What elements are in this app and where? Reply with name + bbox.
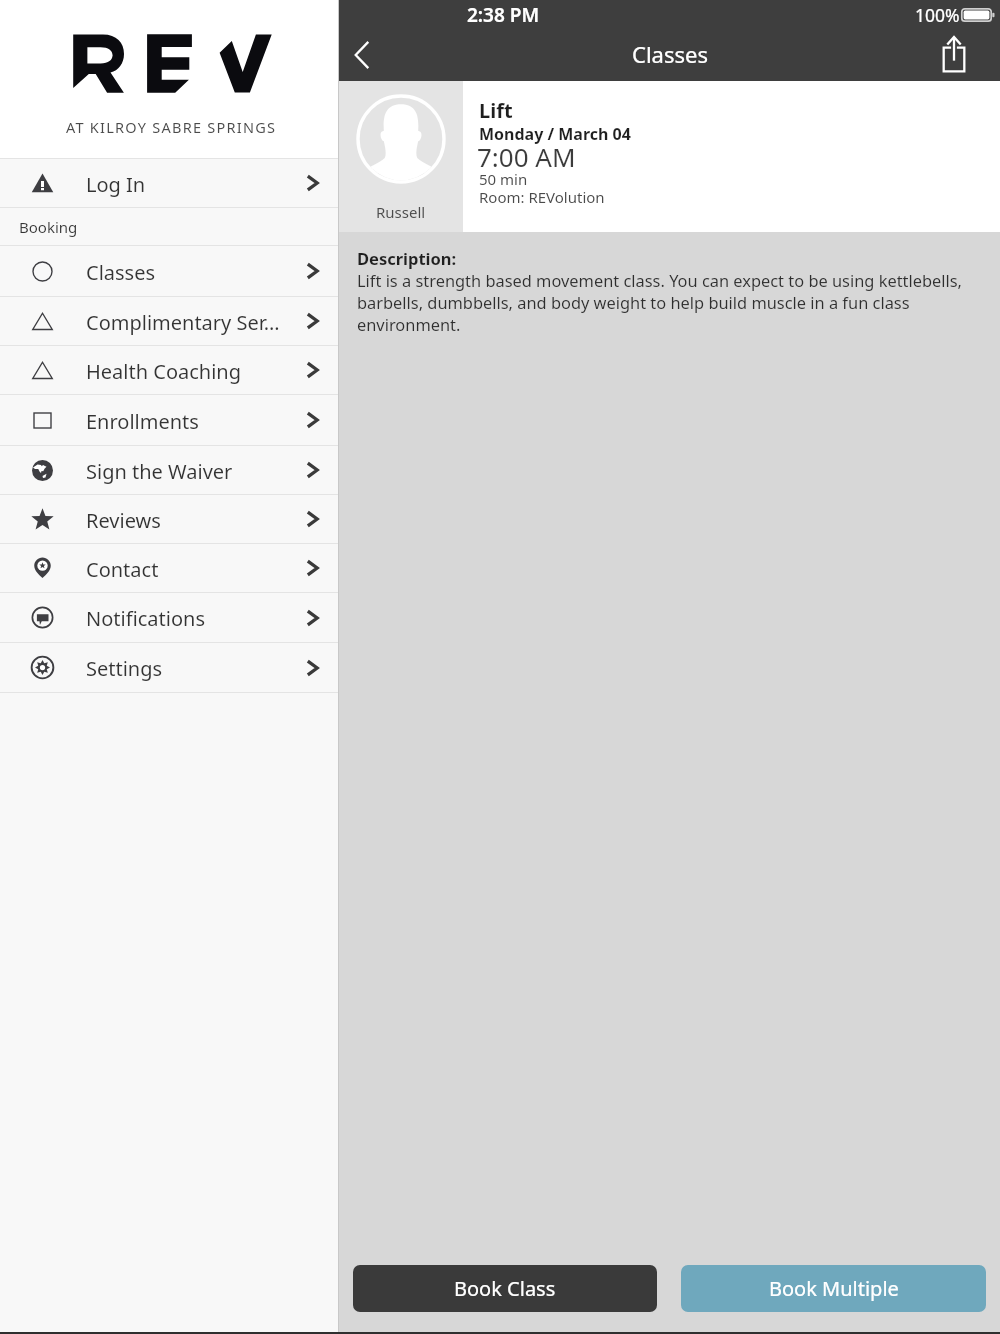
button[interactable]: Back bbox=[339, 28, 385, 81]
staticText: Book Class bbox=[454, 1275, 556, 1302]
button[interactable]: Contact bbox=[0, 544, 338, 592]
button[interactable]: Book Class bbox=[353, 1265, 657, 1312]
staticText: Book Multiple bbox=[769, 1275, 899, 1302]
staticText: Reviews bbox=[86, 507, 286, 534]
staticText: 100% bbox=[915, 3, 960, 27]
button[interactable]: Sign the Waiver bbox=[0, 446, 338, 494]
staticText: Russell bbox=[376, 202, 426, 222]
staticText: Lift is a strength based movement class.… bbox=[357, 269, 967, 335]
button[interactable]: Book Multiple bbox=[681, 1265, 986, 1312]
staticText: 50 min bbox=[479, 169, 528, 189]
staticText: Classes bbox=[86, 259, 286, 286]
button[interactable]: Enrollments bbox=[0, 395, 338, 445]
button[interactable]: Russell bbox=[339, 81, 1000, 232]
staticText: Contact bbox=[86, 556, 286, 583]
staticText: Health Coaching bbox=[86, 358, 286, 385]
staticText: Booking bbox=[19, 217, 78, 237]
staticText: AT KILROY SABRE SPRINGS bbox=[66, 117, 277, 137]
staticText: Lift bbox=[479, 97, 513, 124]
staticText: Description: bbox=[357, 247, 457, 269]
staticText: Notifications bbox=[86, 605, 286, 632]
staticText: Enrollments bbox=[86, 408, 286, 435]
button[interactable]: Health Coaching bbox=[0, 346, 338, 394]
staticText: Monday / March 04 bbox=[479, 123, 631, 145]
staticText: Complimentary Ser… bbox=[86, 309, 286, 336]
button[interactable]: Reviews bbox=[0, 495, 338, 543]
staticText: Classes bbox=[632, 39, 708, 69]
staticText: Settings bbox=[86, 655, 286, 682]
staticText: Room: REVolution bbox=[479, 187, 605, 207]
button[interactable]: Share bbox=[907, 27, 1000, 80]
staticText: Sign the Waiver bbox=[86, 458, 286, 485]
staticText: 7:00 AM bbox=[477, 139, 576, 174]
button[interactable]: Settings bbox=[0, 643, 338, 692]
staticText: Log In bbox=[86, 171, 286, 198]
button[interactable]: Notifications bbox=[0, 593, 338, 642]
button[interactable]: Complimentary Ser… bbox=[0, 297, 338, 345]
button[interactable]: Log In bbox=[0, 159, 338, 207]
button[interactable]: Classes bbox=[0, 246, 338, 296]
staticText: 2:38 PM bbox=[467, 2, 540, 28]
